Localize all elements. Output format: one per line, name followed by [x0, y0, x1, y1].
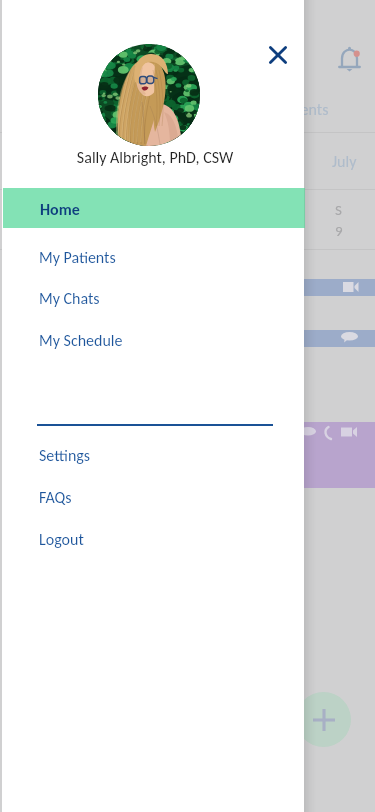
- staticText: FAQs: [39, 488, 72, 508]
- staticText: Settings: [39, 446, 91, 466]
- button[interactable]: Close: [261, 38, 294, 71]
- button[interactable]: My Patients: [2, 238, 304, 278]
- button[interactable]: FAQs: [2, 478, 304, 518]
- staticText: 9: [335, 222, 343, 240]
- button[interactable]: Add: [296, 692, 351, 747]
- button[interactable]: Logout: [2, 520, 304, 560]
- staticText: Home: [40, 200, 80, 220]
- staticText: My Chats: [39, 289, 100, 309]
- staticText: July: [332, 152, 357, 172]
- staticText: My Schedule: [39, 331, 123, 351]
- button[interactable]: Settings: [2, 436, 304, 476]
- button[interactable]: Home: [3, 188, 305, 228]
- button[interactable]: My Schedule: [2, 321, 304, 361]
- staticText: S: [335, 201, 342, 219]
- button[interactable]: My Chats: [2, 279, 304, 319]
- button[interactable]: Notifications: [338, 46, 364, 72]
- staticText: Appointments: [236, 100, 329, 120]
- staticText: My Patients: [39, 248, 116, 268]
- staticText: Logout: [39, 530, 84, 550]
- staticText: Sally Albright, PhD, CSW: [4, 148, 306, 168]
